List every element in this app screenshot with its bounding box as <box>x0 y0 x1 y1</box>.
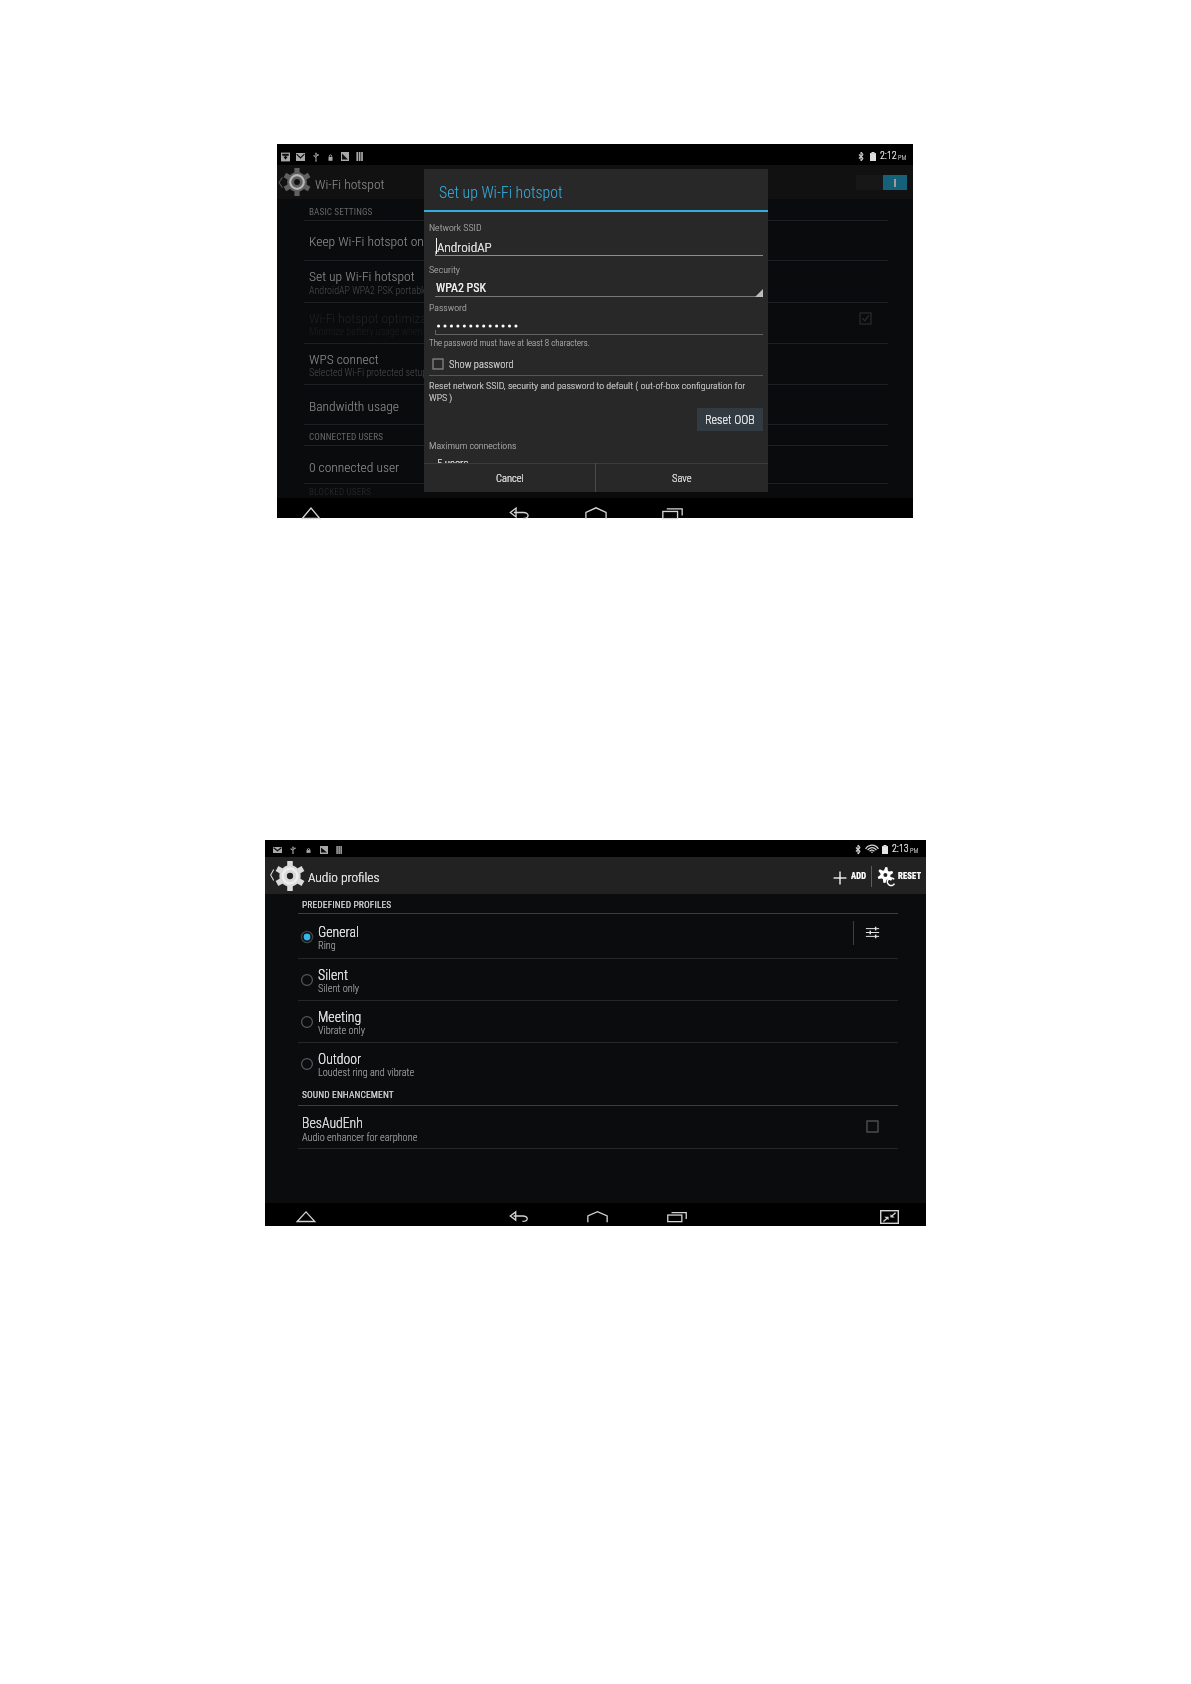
staticText: AndroidAP <box>437 240 492 256</box>
staticText: PREDEFINED PROFILES <box>302 899 392 910</box>
button[interactable] <box>277 455 913 487</box>
staticText: AndroidAP WPA2 PSK portable <box>309 285 428 297</box>
button[interactable] <box>265 999 926 1041</box>
staticText: 5 users <box>437 457 469 470</box>
button[interactable] <box>265 914 926 956</box>
button[interactable] <box>277 306 913 347</box>
staticText: Wi-Fi hotspot <box>315 176 385 192</box>
staticText: Set up Wi-Fi hotspot <box>309 268 415 284</box>
staticText: General <box>318 924 359 940</box>
staticText: Security <box>429 264 460 276</box>
staticText: The password must have at least 8 charac… <box>429 338 590 348</box>
other: Home <box>586 1210 609 1222</box>
button[interactable] <box>265 957 926 999</box>
other: Back <box>509 1210 530 1222</box>
staticText: Cancel <box>496 472 524 484</box>
other: Equalizer <box>865 925 880 940</box>
staticText: Silent <box>318 967 348 983</box>
other: Menu <box>296 1210 316 1222</box>
other: Menu <box>301 506 321 519</box>
staticText: Outdoor <box>318 1051 362 1067</box>
staticText: Reset OOB <box>705 413 755 427</box>
button[interactable]: Cancel <box>424 463 595 492</box>
staticText: 2:13 <box>892 843 909 855</box>
staticText: 2:12 <box>880 150 897 162</box>
staticText: BLOCKED USERS <box>309 486 372 497</box>
staticText: 0 connected user <box>309 459 400 475</box>
other: Screenshot <box>880 1210 899 1224</box>
button[interactable] <box>277 229 913 264</box>
button[interactable]: Show password <box>428 355 514 372</box>
staticText: Show password <box>449 358 514 370</box>
staticText: Set up Wi-Fi hotspot <box>439 183 563 202</box>
staticText: Vibrate only <box>318 1024 366 1036</box>
button[interactable]: Reset OOB <box>697 408 763 431</box>
staticText: Loudest ring and vibrate <box>318 1066 415 1078</box>
staticText: Selected Wi-Fi protected setup <box>309 367 428 379</box>
other: Back <box>277 176 284 189</box>
button[interactable]: Save <box>596 463 768 492</box>
button[interactable]: Hotspot toggle <box>856 175 907 190</box>
staticText: Meeting <box>318 1009 362 1025</box>
staticText: SOUND ENHANCEMENT <box>302 1089 394 1100</box>
staticText: PM <box>910 847 919 855</box>
staticText: Reset network SSID, security and passwor… <box>429 380 746 392</box>
button[interactable] <box>874 857 926 894</box>
other: Home <box>584 506 608 519</box>
button[interactable] <box>265 1110 926 1148</box>
staticText: Ring <box>318 939 336 951</box>
other: Recents <box>661 506 684 519</box>
staticText: WPS ) <box>429 392 453 404</box>
staticText: Network SSID <box>429 222 482 234</box>
staticText: RESET <box>898 871 922 881</box>
button[interactable] <box>277 347 913 388</box>
staticText: Silent only <box>318 982 360 994</box>
staticText: BesAudEnh <box>302 1115 363 1131</box>
staticText: WPA2 PSK <box>436 281 486 295</box>
staticText: Maximum connections <box>429 440 517 452</box>
staticText: Audio enhancer for earphone <box>302 1131 418 1143</box>
staticText: BASIC SETTINGS <box>309 206 373 217</box>
staticText: ADD <box>851 871 867 881</box>
staticText: Save <box>672 472 692 484</box>
staticText: Keep Wi-Fi hotspot on <box>309 233 424 249</box>
other: Back <box>509 506 531 519</box>
button[interactable] <box>277 394 913 428</box>
staticText: Minimize battery usage when <box>309 326 423 338</box>
button[interactable] <box>265 1041 926 1083</box>
staticText: PM <box>898 154 907 162</box>
staticText: CONNECTED USERS <box>309 431 384 442</box>
other: Recents <box>666 1210 688 1222</box>
button[interactable] <box>823 857 870 894</box>
staticText: Bandwidth usage <box>309 398 400 414</box>
staticText: WPS connect <box>309 351 379 367</box>
staticText: Password <box>429 302 467 314</box>
other: Back <box>269 868 275 882</box>
staticText: Audio profiles <box>308 869 380 885</box>
staticText: Wi-Fi hotspot optimization <box>309 310 447 326</box>
button[interactable] <box>277 264 913 306</box>
